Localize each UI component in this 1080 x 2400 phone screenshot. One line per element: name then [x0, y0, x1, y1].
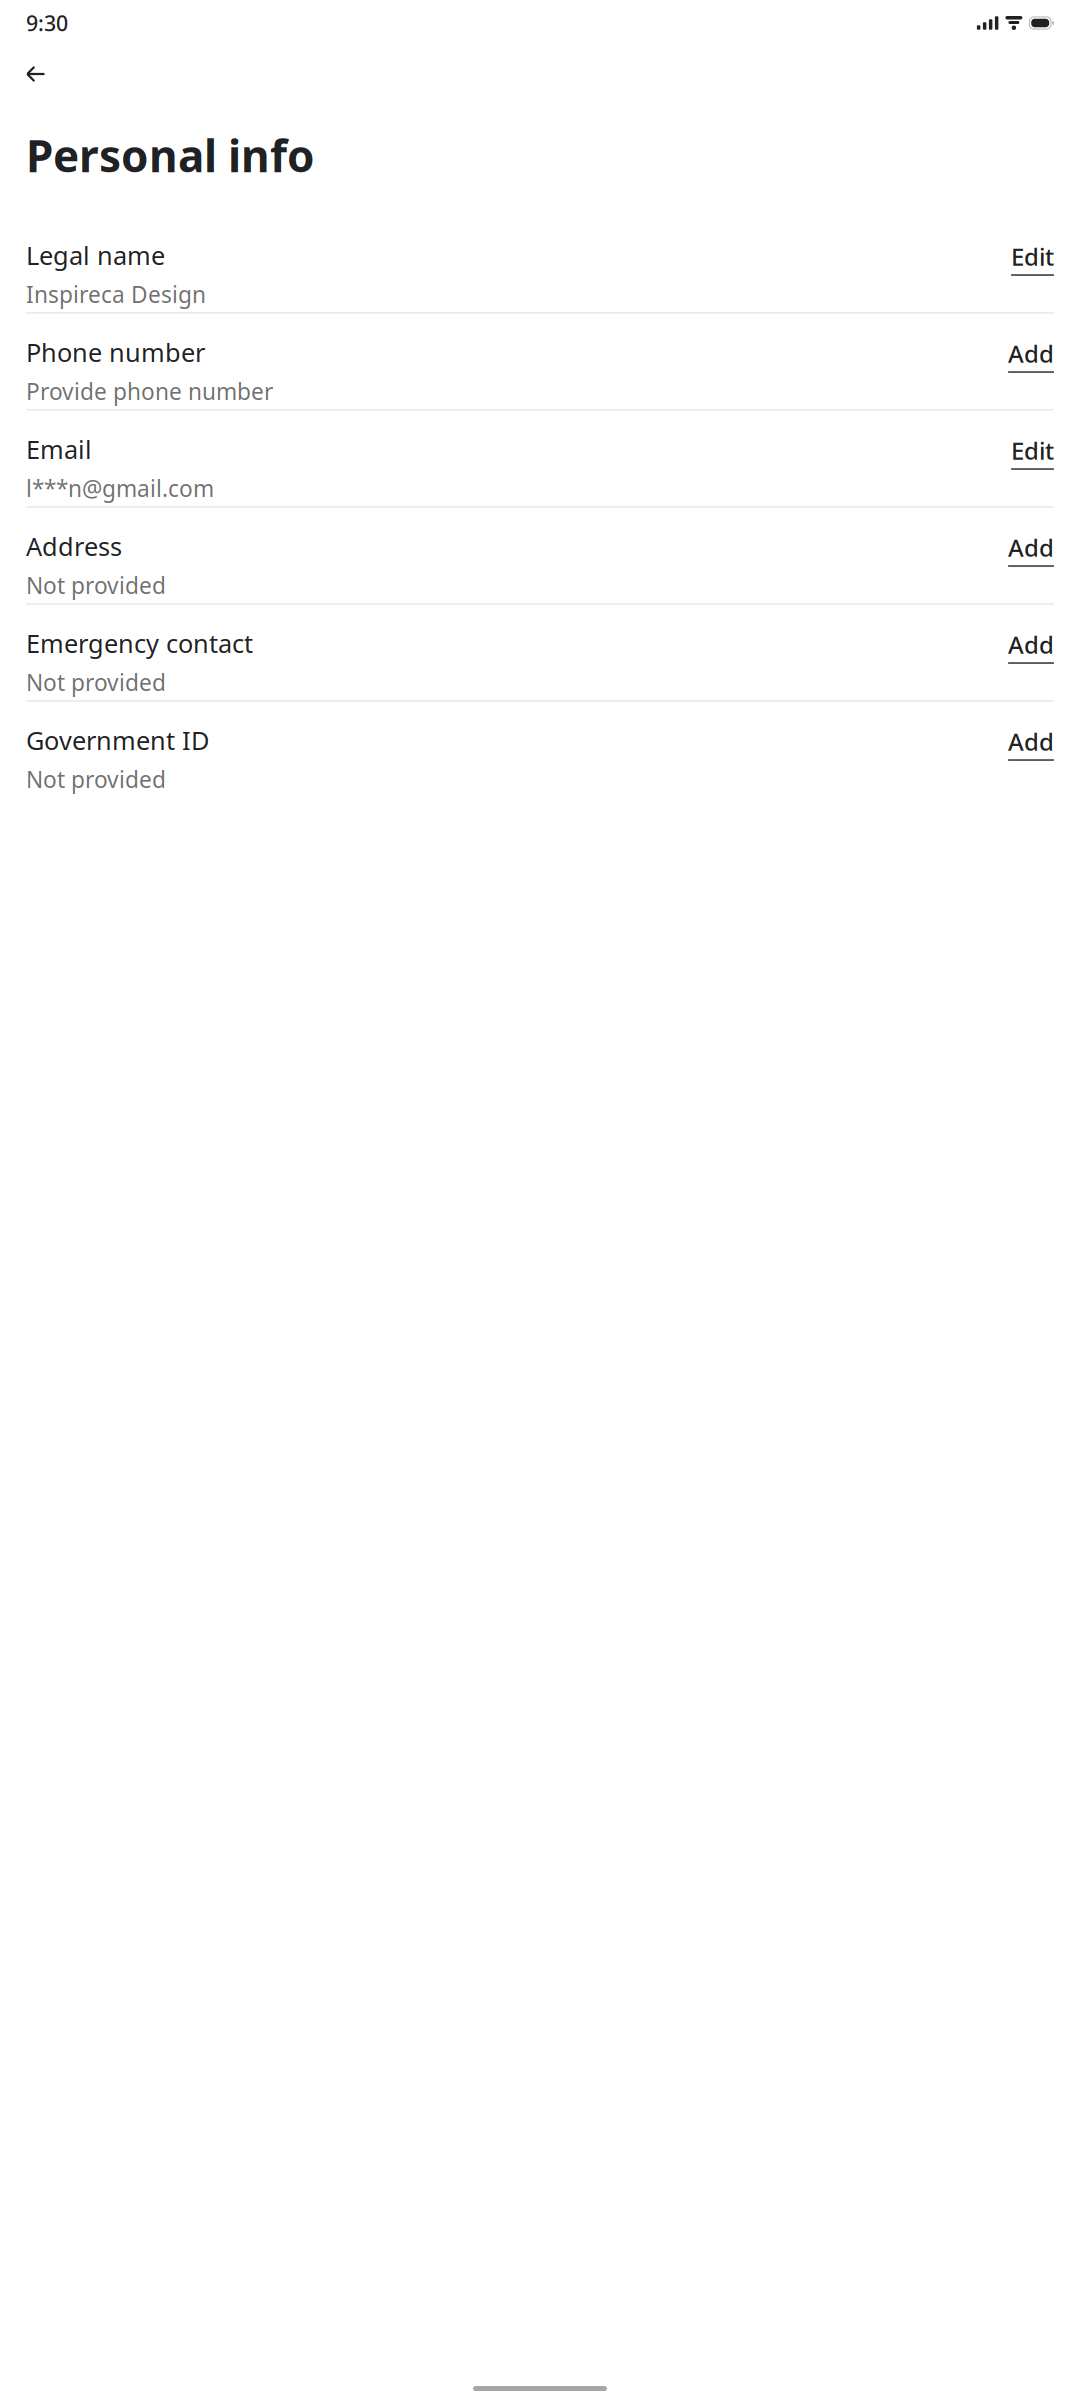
button[interactable]: Address [26, 507, 1054, 604]
staticText: Add [1008, 337, 1054, 369]
staticText: Not provided [26, 764, 166, 794]
button[interactable]: Add [1008, 335, 1054, 375]
staticText: Edit [1011, 240, 1054, 272]
staticText: Personal info [26, 126, 315, 184]
button[interactable]: Phone number [26, 313, 1054, 410]
button[interactable]: Emergency contact [26, 604, 1054, 701]
button[interactable]: Add [1008, 626, 1054, 666]
button[interactable]: Add [1008, 529, 1054, 569]
staticText: l***n@gmail.com [26, 473, 214, 503]
button[interactable]: Edit [1011, 238, 1054, 278]
staticText: Edit [1011, 434, 1054, 466]
button[interactable]: Legal name [26, 216, 1054, 313]
staticText: 9:30 [26, 9, 68, 37]
staticText: Provide phone number [26, 376, 273, 406]
staticText: Legal name [26, 238, 165, 272]
staticText: Government ID [26, 723, 209, 757]
staticText: Add [1008, 531, 1054, 563]
staticText: Phone number [26, 335, 205, 369]
staticText: Inspireca Design [26, 279, 206, 309]
button[interactable]: Government ID [26, 701, 1054, 798]
staticText: Not provided [26, 667, 166, 697]
staticText: Not provided [26, 570, 166, 600]
staticText: Add [1008, 725, 1054, 757]
staticText: Email [26, 432, 92, 466]
button[interactable]: Add [1008, 723, 1054, 763]
staticText: Add [1008, 628, 1054, 660]
button[interactable]: Email [26, 410, 1054, 507]
staticText: Address [26, 529, 122, 563]
button[interactable]: Back [24, 52, 68, 96]
button[interactable]: Edit [1011, 432, 1054, 472]
staticText: Emergency contact [26, 626, 253, 660]
